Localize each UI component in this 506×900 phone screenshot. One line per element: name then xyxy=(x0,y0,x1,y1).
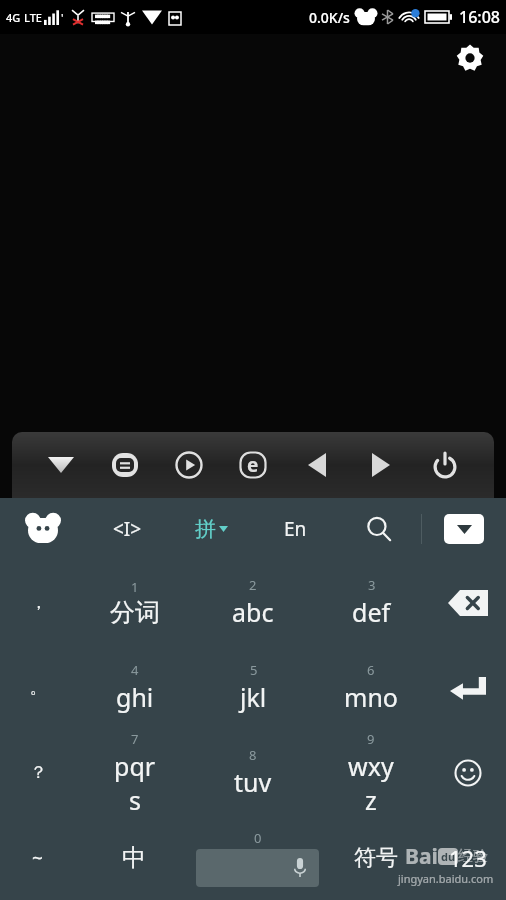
staticText: ' xyxy=(61,10,64,25)
button[interactable]: Hide keyboard xyxy=(422,498,506,560)
button[interactable]: Hide keyboard xyxy=(38,442,84,488)
staticText: ， xyxy=(30,592,47,613)
button[interactable]: Play xyxy=(166,442,212,488)
staticText: tuv xyxy=(234,765,272,799)
button[interactable]: emoji xyxy=(430,730,506,815)
button[interactable]: 中 xyxy=(75,815,193,900)
button[interactable]: enter xyxy=(430,645,506,730)
staticText: 4G xyxy=(6,10,21,25)
button[interactable]: 4 xyxy=(76,645,194,730)
staticText: 中 xyxy=(122,843,146,873)
button[interactable]: 6 xyxy=(312,645,430,730)
staticText: 分词 xyxy=(110,597,160,628)
staticText: jkl xyxy=(240,680,267,714)
staticText: e xyxy=(247,452,259,478)
staticText: mno xyxy=(344,680,398,714)
button[interactable]: 123 xyxy=(430,815,506,900)
button[interactable]: Baidu input xyxy=(0,498,85,560)
staticText: 123 xyxy=(449,843,487,873)
staticText: 8 xyxy=(249,746,257,764)
staticText: jingyan.baidu.com xyxy=(398,871,494,886)
staticText: 3 xyxy=(368,576,376,594)
button[interactable]: Next xyxy=(358,442,404,488)
staticText: 16:08 xyxy=(459,6,500,28)
staticText: Bai xyxy=(405,842,438,871)
staticText: 9 xyxy=(367,730,375,748)
staticText: 6 xyxy=(367,661,375,679)
button[interactable]: ？ xyxy=(0,730,76,815)
staticText: ~ xyxy=(32,845,43,871)
button[interactable]: 拼 xyxy=(169,498,253,560)
button[interactable]: 9 xyxy=(312,730,430,815)
staticText: 2 xyxy=(249,576,257,594)
button[interactable]: En xyxy=(253,498,337,560)
staticText: <I> xyxy=(113,516,142,542)
button[interactable]: 1 xyxy=(76,560,194,645)
staticText: 1 xyxy=(131,578,139,596)
button[interactable]: ~ xyxy=(0,815,75,900)
button[interactable]: Previous xyxy=(294,442,340,488)
button[interactable]: Browser xyxy=(230,442,276,488)
staticText: 经验 xyxy=(458,847,488,866)
button[interactable]: Move cursor xyxy=(85,498,169,560)
button[interactable]: 5 xyxy=(194,645,312,730)
staticText: 0 xyxy=(254,829,262,847)
staticText: 4 xyxy=(131,661,139,679)
staticText: 5 xyxy=(250,661,258,679)
button[interactable]: Space xyxy=(193,815,322,900)
button[interactable]: Search xyxy=(337,498,421,560)
button[interactable]: 7 xyxy=(76,730,194,815)
button[interactable]: 2 xyxy=(194,560,312,645)
staticText: pqr xyxy=(114,749,156,783)
staticText: 0.0K/s xyxy=(309,8,350,27)
button[interactable]: 3 xyxy=(312,560,430,645)
staticText: En xyxy=(284,516,307,542)
button[interactable]: Power xyxy=(422,442,468,488)
button[interactable]: backspace xyxy=(430,560,506,645)
staticText: LTE xyxy=(24,10,42,25)
staticText: def xyxy=(352,595,391,629)
button[interactable]: Settings xyxy=(448,36,492,80)
staticText: ghi xyxy=(116,680,154,714)
staticText: 。 xyxy=(30,677,47,698)
staticText: wxy xyxy=(348,749,394,783)
button[interactable]: 8 xyxy=(194,730,312,815)
staticText: z xyxy=(365,783,377,815)
staticText: 符号 xyxy=(354,844,398,872)
staticText: abc xyxy=(232,595,274,629)
staticText: du xyxy=(441,849,456,864)
staticText: s xyxy=(129,783,141,815)
staticText: 拼 xyxy=(195,516,216,542)
staticText: 7 xyxy=(131,730,139,748)
button[interactable]: 符号 xyxy=(322,815,430,900)
button[interactable]: 。 xyxy=(0,645,76,730)
staticText: ？ xyxy=(30,762,47,783)
button[interactable]: Keyboard xyxy=(102,442,148,488)
button[interactable]: ， xyxy=(0,560,76,645)
